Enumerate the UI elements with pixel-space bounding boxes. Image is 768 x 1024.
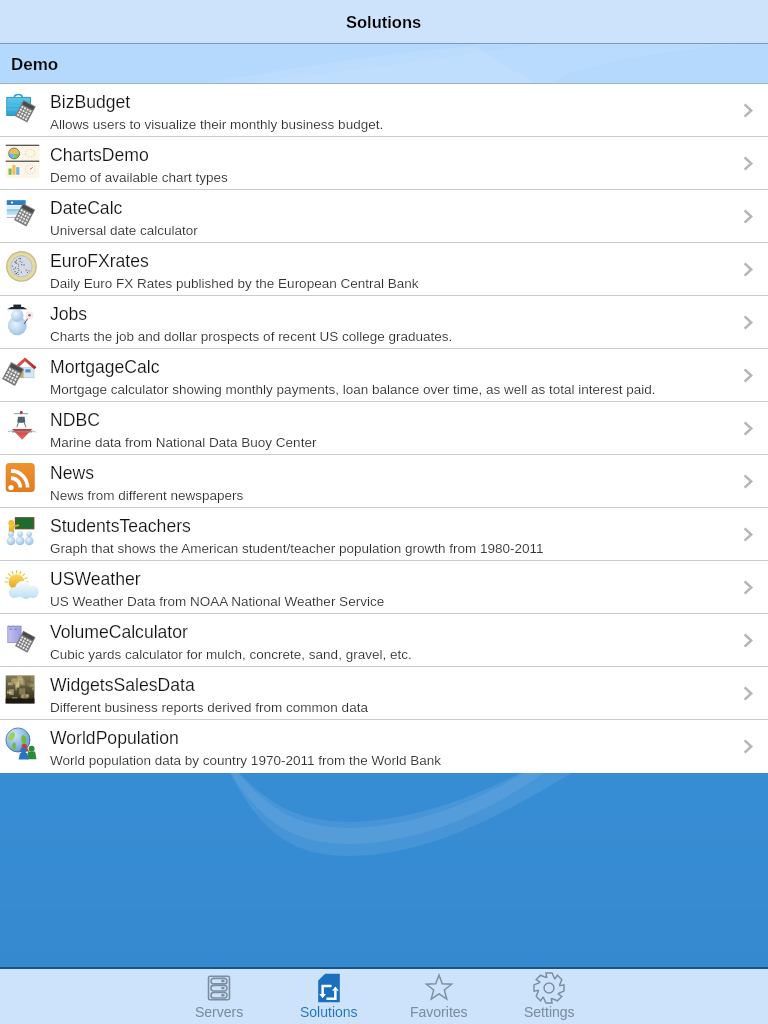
staticText: Different business reports derived from … [50, 700, 368, 715]
other: Favorites [423, 972, 455, 1004]
staticText: Solutions [346, 13, 422, 31]
staticText: Marine data from National Data Buoy Cent… [50, 435, 317, 450]
staticText: Jobs [50, 304, 88, 324]
staticText: ChartsDemo [50, 145, 149, 165]
button[interactable]: DateCalc [0, 190, 768, 243]
button[interactable]: News [0, 455, 768, 508]
other: Settings [533, 972, 565, 1004]
staticText: Mortgage calculator showing monthly paym… [50, 382, 656, 397]
button[interactable]: WorldPopulation [0, 720, 768, 773]
staticText: News from different newspapers [50, 488, 244, 503]
staticText: WidgetsSalesData [50, 675, 195, 695]
button[interactable]: Favorites [384, 969, 494, 1024]
staticText: MortgageCalc [50, 357, 160, 377]
button[interactable]: WidgetsSalesData [0, 667, 768, 720]
button[interactable]: BizBudget [0, 84, 768, 137]
staticText: US Weather Data from NOAA National Weath… [50, 594, 385, 609]
staticText: Charts the job and dollar prospects of r… [50, 329, 453, 344]
staticText: WorldPopulation [50, 728, 179, 748]
button[interactable]: EuroFXrates [0, 243, 768, 296]
staticText: Demo of available chart types [50, 170, 228, 185]
staticText: Allows users to visualize their monthly … [50, 117, 384, 132]
button[interactable]: VolumeCalculator [0, 614, 768, 667]
button[interactable]: Jobs [0, 296, 768, 349]
staticText: NDBC [50, 410, 100, 430]
staticText: Universal date calculator [50, 223, 198, 238]
staticText: News [50, 463, 94, 483]
staticText: Solutions [300, 1004, 358, 1020]
button[interactable]: Servers [164, 969, 274, 1024]
other: Servers [203, 972, 235, 1004]
staticText: VolumeCalculator [50, 622, 188, 642]
staticText: Settings [524, 1004, 575, 1020]
button[interactable]: USWeather [0, 561, 768, 614]
button[interactable]: Settings [494, 969, 604, 1024]
staticText: Graph that shows the American student/te… [50, 541, 544, 556]
staticText: World population data by country 1970-20… [50, 753, 441, 768]
staticText: BizBudget [50, 92, 131, 112]
staticText: Demo [11, 55, 59, 74]
button[interactable]: Solutions [274, 969, 384, 1024]
button[interactable]: NDBC [0, 402, 768, 455]
staticText: StudentsTeachers [50, 516, 191, 536]
button[interactable]: StudentsTeachers [0, 508, 768, 561]
staticText: USWeather [50, 569, 141, 589]
staticText: Servers [195, 1004, 244, 1020]
button[interactable]: ChartsDemo [0, 137, 768, 190]
other: Solutions [313, 972, 345, 1004]
staticText: DateCalc [50, 198, 123, 218]
staticText: Cubic yards calculator for mulch, concre… [50, 647, 412, 662]
staticText: EuroFXrates [50, 251, 149, 271]
button[interactable]: MortgageCalc [0, 349, 768, 402]
staticText: Daily Euro FX Rates published by the Eur… [50, 276, 419, 291]
staticText: Favorites [410, 1004, 468, 1020]
